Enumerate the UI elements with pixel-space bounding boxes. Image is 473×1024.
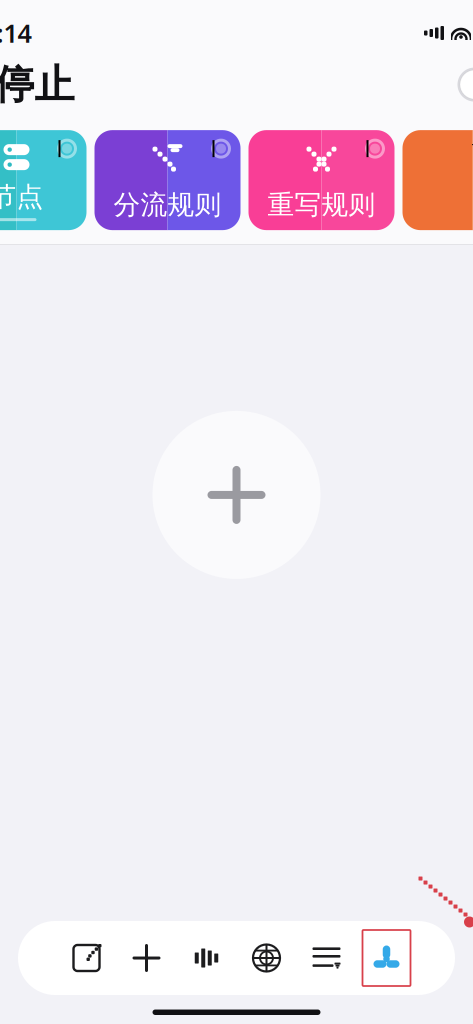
button[interactable]: Network [236,921,296,995]
button[interactable]: 节点 [0,130,86,230]
button[interactable]: Requests [296,921,356,995]
button[interactable]: Add profile [152,411,320,579]
button[interactable]: Enable proxy [457,68,473,102]
staticText: 节点 [0,180,43,213]
staticText: 分流规则 [113,188,221,221]
staticText: 重写规则 [267,188,375,221]
button[interactable]: 分流规则 [94,130,240,230]
button[interactable]: More [356,921,416,995]
button[interactable] [402,130,473,230]
button[interactable]: Statistics [176,921,236,995]
button[interactable]: Add [116,921,176,995]
button[interactable]: 重写规则 [248,130,394,230]
staticText: 已停止 [0,60,74,109]
staticText: 11:14 [0,16,31,50]
button[interactable]: Compose [56,921,116,995]
